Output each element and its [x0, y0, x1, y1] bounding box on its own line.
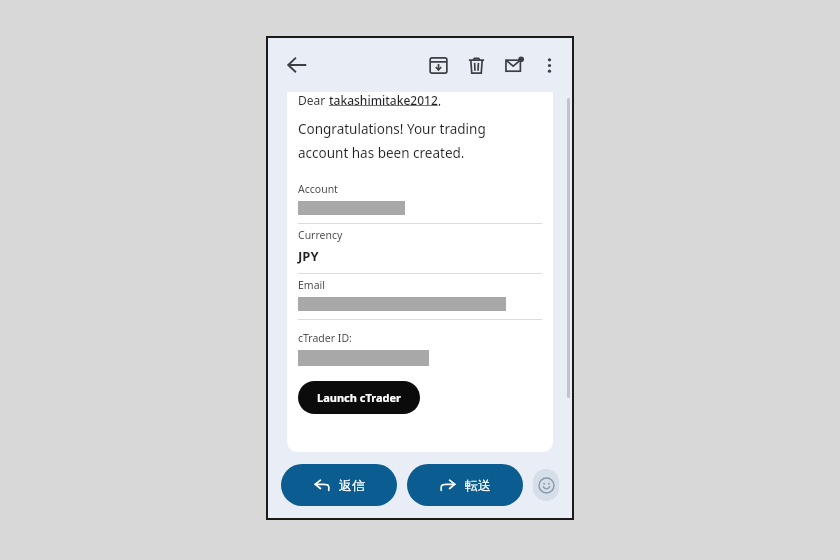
- staticText: 返信: [339, 477, 365, 493]
- staticText: takashimitake2012: [329, 92, 438, 106]
- button[interactable]: Launch cTrader: [298, 381, 420, 414]
- button[interactable]: Archive: [421, 48, 455, 82]
- button[interactable]: Delete: [459, 48, 493, 82]
- staticText: account has been created.: [298, 144, 465, 162]
- button[interactable]: 転送: [407, 464, 523, 506]
- staticText: Congratulations! Your trading: [298, 120, 486, 138]
- button[interactable]: Add reaction: [533, 469, 559, 501]
- staticText: ,: [438, 92, 442, 106]
- staticText: 転送: [465, 477, 491, 493]
- staticText: Account: [298, 182, 338, 196]
- button[interactable]: More options: [532, 48, 566, 82]
- button[interactable]: 返信: [281, 464, 397, 506]
- staticText: Currency: [298, 228, 343, 242]
- staticText: Launch cTrader: [317, 390, 401, 405]
- button[interactable]: Mark unread: [497, 48, 531, 82]
- button[interactable]: Back: [278, 46, 316, 84]
- staticText: JPY: [298, 247, 319, 265]
- staticText: Dear: [298, 92, 329, 106]
- staticText: cTrader ID:: [298, 331, 352, 345]
- staticText: Email: [298, 278, 325, 292]
